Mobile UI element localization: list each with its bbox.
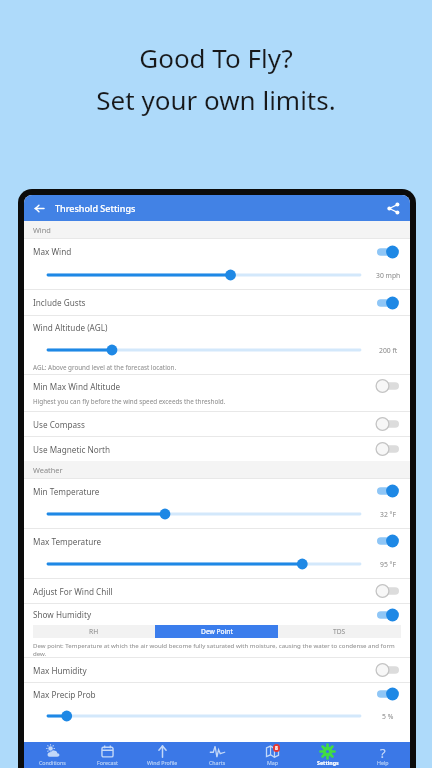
button[interactable] (375, 662, 400, 678)
staticText: Include Gusts (33, 297, 86, 308)
button[interactable] (375, 607, 400, 623)
button[interactable] (375, 686, 400, 702)
staticText: Threshold Settings (55, 202, 136, 214)
button[interactable]: Max Precip Prob (24, 683, 410, 705)
button[interactable]: Max Humidity (24, 658, 410, 682)
button[interactable] (48, 705, 360, 727)
button[interactable]: Charts (190, 742, 245, 768)
staticText: 30 mph (376, 271, 401, 280)
button[interactable]: Help (355, 742, 410, 768)
staticText: Wind Profile (147, 759, 178, 766)
button[interactable] (375, 378, 400, 394)
staticText: Set your own limits. (96, 82, 336, 117)
button[interactable] (375, 295, 400, 311)
staticText: Show Humidity (33, 609, 92, 620)
button[interactable] (375, 416, 400, 432)
button[interactable]: Wind Profile (135, 742, 190, 768)
staticText: RH (89, 627, 99, 636)
staticText: Conditions (39, 759, 66, 766)
staticText: Highest you can fly before the wind spee… (33, 397, 226, 406)
staticText: Max Temperature (33, 536, 102, 547)
button[interactable] (375, 441, 400, 457)
button[interactable]: Adjust For Wind Chill (24, 579, 410, 603)
button[interactable]: Min Temperature (24, 479, 410, 503)
staticText: 200 ft (379, 346, 398, 355)
staticText: 95 °F (380, 560, 396, 569)
button[interactable]: Include Gusts (24, 290, 410, 315)
staticText: Use Magnetic North (33, 444, 111, 455)
staticText: 8 (275, 745, 278, 752)
button[interactable]: Back (31, 200, 47, 216)
staticText: 32 °F (380, 510, 396, 519)
button[interactable]: Conditions (24, 742, 80, 768)
button[interactable]: Min Max Wind Altitude (24, 375, 410, 411)
staticText: Map (267, 759, 279, 766)
button[interactable] (375, 483, 400, 499)
button[interactable] (375, 533, 400, 549)
button[interactable] (375, 583, 400, 599)
staticText: Min Max Wind Altitude (33, 381, 121, 392)
staticText: Wind (33, 225, 51, 235)
button[interactable]: TDS (278, 625, 401, 638)
button[interactable]: Max Wind (24, 239, 410, 264)
staticText: Forecast (97, 759, 118, 766)
staticText: ? (380, 744, 386, 759)
button[interactable]: Share (384, 199, 402, 217)
staticText: Adjust For Wind Chill (33, 586, 113, 597)
staticText: AGL: Above ground level at the forecast … (33, 363, 177, 372)
staticText: Help (377, 759, 389, 766)
button[interactable] (48, 339, 360, 361)
button[interactable] (48, 264, 360, 286)
button[interactable] (48, 503, 360, 525)
staticText: Dew Point (201, 627, 233, 636)
staticText: Max Humidity (33, 665, 87, 676)
button[interactable]: Show Humidity (24, 604, 410, 625)
staticText: Max Precip Prob (33, 689, 96, 700)
staticText: Good To Fly? (139, 40, 293, 75)
staticText: Min Temperature (33, 486, 100, 497)
button[interactable]: Max Temperature (24, 529, 410, 553)
button[interactable]: Dew Point (155, 625, 278, 638)
button[interactable] (375, 244, 400, 260)
button[interactable]: Use Magnetic North (24, 437, 410, 461)
staticText: Charts (209, 759, 226, 766)
button[interactable] (48, 553, 360, 575)
button[interactable]: Settings (300, 742, 355, 768)
staticText: 5 % (382, 712, 394, 721)
staticText: Settings (317, 759, 339, 766)
staticText: Dew point: Temperature at which the air … (33, 641, 401, 657)
button[interactable]: RH (33, 625, 155, 638)
staticText: Wind Altitude (AGL) (33, 322, 108, 333)
staticText: Max Wind (33, 246, 72, 257)
button[interactable]: Use Compass (24, 412, 410, 436)
staticText: Use Compass (33, 419, 85, 430)
button[interactable]: Map (245, 742, 300, 768)
button[interactable]: Forecast (80, 742, 135, 768)
staticText: Weather (33, 465, 63, 475)
staticText: TDS (333, 627, 346, 636)
